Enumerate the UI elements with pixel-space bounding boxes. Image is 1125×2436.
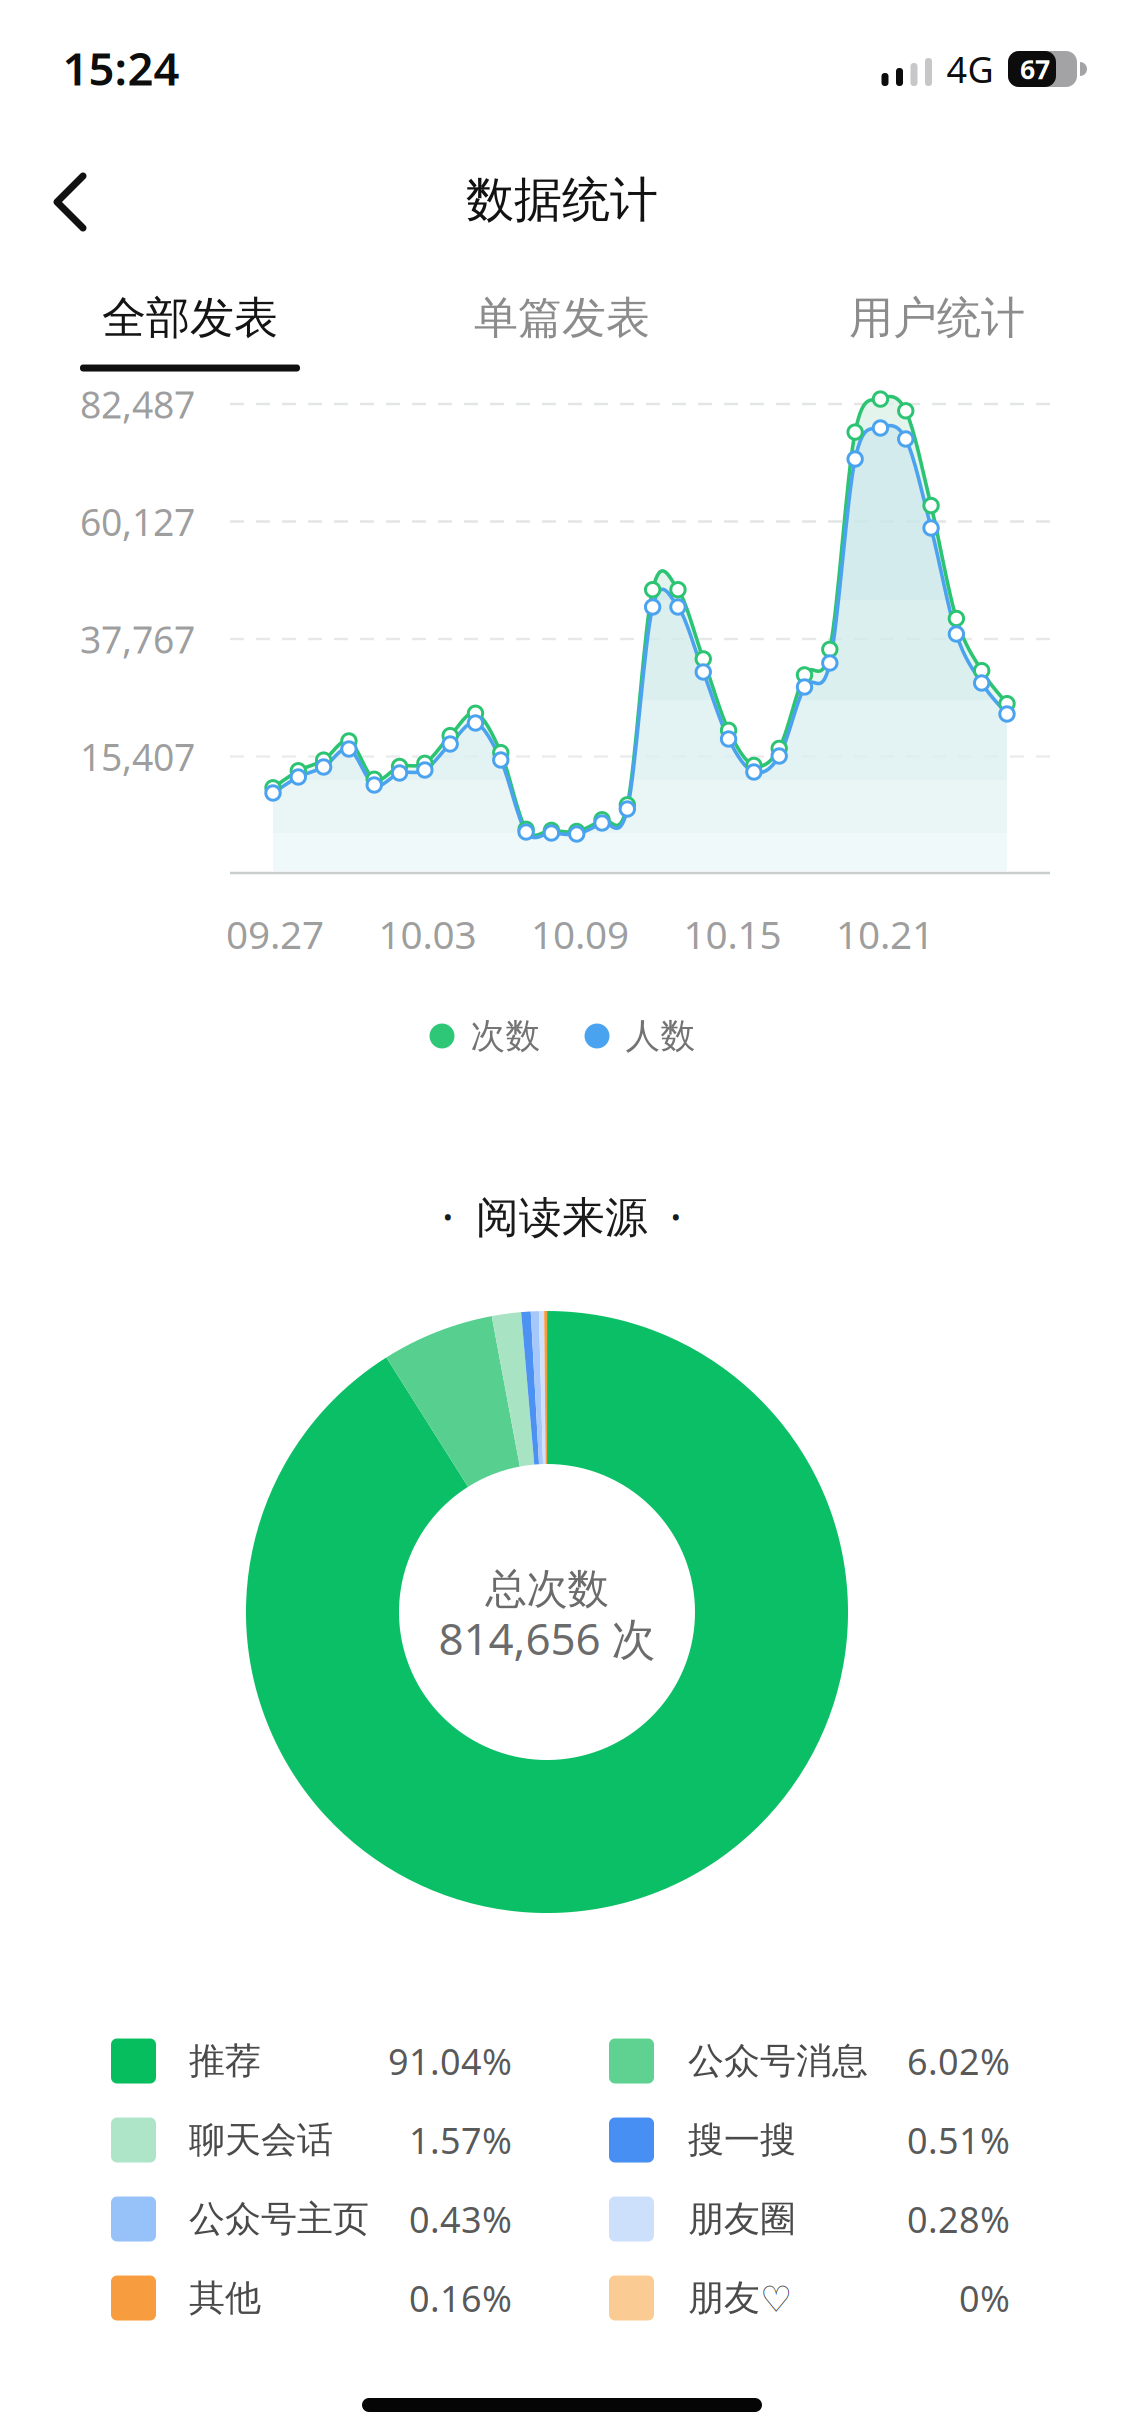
staticText: 4G — [946, 45, 993, 93]
staticText: 10.15 — [683, 908, 781, 960]
staticText: 数据统计 — [466, 170, 658, 229]
button[interactable]: 单篇发表 — [474, 291, 650, 345]
staticText: 推荐 — [189, 2039, 261, 2083]
staticText: 91.04% — [388, 2037, 512, 2085]
staticText: 朋友圈 — [688, 2197, 796, 2241]
staticText: 人数 — [625, 1015, 695, 1057]
staticText: 0% — [959, 2274, 1010, 2322]
button[interactable]: 次数 — [429, 1015, 540, 1057]
staticText: 搜一搜 — [688, 2118, 796, 2162]
staticText: 朋友♡ — [688, 2276, 792, 2320]
staticText: 0.43% — [409, 2195, 512, 2243]
staticText: 全部发表 — [102, 291, 278, 345]
staticText: 15:24 — [62, 38, 179, 98]
staticText: 67 — [1020, 51, 1050, 87]
staticText: 10.09 — [531, 908, 629, 960]
staticText: 60,127 — [80, 497, 195, 546]
staticText: 814,656 次 — [438, 1609, 655, 1667]
staticText: 6.02% — [907, 2037, 1010, 2085]
staticText: 82,487 — [80, 379, 195, 429]
staticText: 1.57% — [409, 2116, 512, 2164]
staticText: 10.21 — [836, 908, 934, 960]
staticText: · 阅读来源 · — [442, 1188, 682, 1244]
staticText: 0.16% — [409, 2274, 512, 2322]
staticText: 10.03 — [378, 908, 476, 960]
staticText: 37,767 — [80, 614, 195, 664]
button[interactable]: 人数 — [584, 1015, 695, 1057]
button[interactable]: 用户统计 — [849, 291, 1025, 345]
staticText: 公众号主页 — [189, 2197, 369, 2241]
staticText: 用户统计 — [849, 291, 1025, 345]
button[interactable]: Back — [39, 172, 101, 232]
staticText: 总次数 — [485, 1564, 608, 1614]
button[interactable]: 全部发表 — [102, 291, 278, 345]
staticText: 聊天会话 — [189, 2118, 333, 2162]
staticText: 0.51% — [907, 2116, 1010, 2164]
staticText: 其他 — [189, 2276, 261, 2320]
staticText: 次数 — [470, 1015, 540, 1057]
staticText: 单篇发表 — [474, 291, 650, 345]
staticText: 15,407 — [80, 732, 195, 781]
staticText: 公众号消息 — [688, 2039, 868, 2083]
staticText: 09.27 — [226, 908, 324, 960]
staticText: 0.28% — [907, 2195, 1010, 2243]
